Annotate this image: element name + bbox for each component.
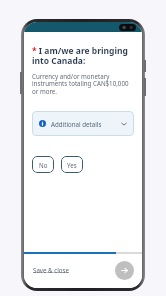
other: Expand additional details xyxy=(121,121,127,127)
button[interactable]: Additional details xyxy=(32,111,134,136)
button[interactable]: Yes xyxy=(61,156,83,173)
button[interactable]: No xyxy=(32,156,54,173)
staticText: Save & close xyxy=(33,266,70,274)
staticText: Additional details xyxy=(51,120,121,128)
staticText: No xyxy=(39,161,48,169)
staticText: * I am/we are bringing into Canada: xyxy=(32,45,134,66)
staticText: Currency and/or monetary instruments tot… xyxy=(32,72,134,96)
staticText: Yes xyxy=(67,161,77,169)
button[interactable]: Next xyxy=(115,261,134,280)
button[interactable]: Save & close xyxy=(32,263,71,277)
